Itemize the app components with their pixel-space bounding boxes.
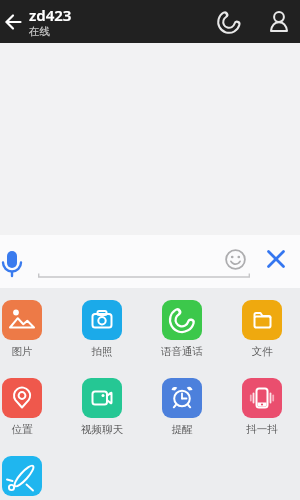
button[interactable]: 提醒 [144,378,220,436]
button[interactable]: 视频聊天 [64,378,140,436]
button[interactable]: 语音通话 [144,300,220,358]
button[interactable]: 拍照 [64,300,140,358]
staticText: 在线 [29,25,50,38]
button[interactable] [260,245,292,273]
staticText: 位置 [0,423,60,436]
button[interactable] [263,0,295,43]
staticText: 语音通话 [144,345,220,358]
button[interactable] [0,246,24,280]
button[interactable] [2,456,42,496]
staticText: 拍照 [64,345,140,358]
button[interactable] [214,0,244,43]
staticText: 提醒 [144,423,220,436]
staticText: zd423 [29,5,72,25]
button[interactable] [222,245,248,273]
button[interactable]: 图片 [0,300,60,358]
staticText: 文件 [224,345,300,358]
staticText: 图片 [0,345,60,358]
button[interactable] [0,0,28,43]
button[interactable]: 位置 [0,378,60,436]
button[interactable]: 抖一抖 [224,378,300,436]
button[interactable]: 文件 [224,300,300,358]
staticText: 视频聊天 [64,423,140,436]
staticText: 抖一抖 [224,423,300,436]
